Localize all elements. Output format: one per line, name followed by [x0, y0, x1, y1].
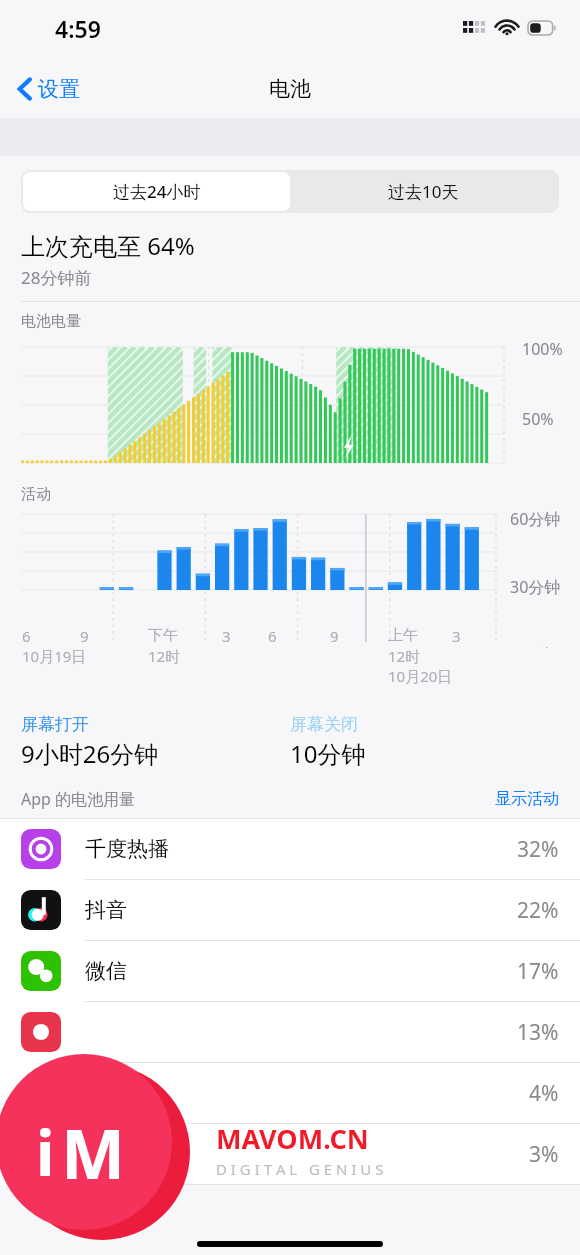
button[interactable]: 设置: [12, 70, 86, 108]
staticText: 微信: [85, 958, 517, 984]
button[interactable]: 显示活动: [495, 789, 559, 809]
staticText: 4:59: [55, 13, 101, 44]
staticText: 4%: [529, 1079, 559, 1108]
staticText: 10月19日: [22, 646, 87, 666]
staticText: 100%: [522, 338, 563, 360]
button[interactable]: 4%: [0, 1063, 580, 1124]
staticText: 0分钟: [510, 644, 552, 648]
staticText: 屏幕打开: [21, 714, 89, 735]
staticText: 电池电量: [21, 312, 81, 331]
staticText: 30分钟: [510, 576, 561, 598]
staticText: 60分钟: [510, 508, 561, 530]
staticText: 上次充电至 64%: [21, 229, 195, 262]
staticText: 10分钟: [290, 737, 366, 770]
button[interactable]: 13%: [0, 1002, 580, 1063]
button[interactable]: 过去24小时: [23, 172, 290, 211]
staticText: 屏幕关闭: [290, 714, 358, 735]
staticText: D I G I T A L G E N I U S: [216, 1159, 384, 1179]
staticText: 浏览器: [85, 1141, 529, 1167]
staticText: 过去10天: [388, 180, 459, 203]
staticText: 千度热播: [85, 836, 517, 862]
button[interactable]: 抖音: [0, 880, 580, 941]
staticText: 9小时26分钟: [21, 737, 159, 770]
staticText: 50%: [522, 408, 554, 430]
staticText: 过去24小时: [113, 180, 201, 203]
staticText: 32%: [517, 835, 559, 864]
button[interactable]: 浏览器: [0, 1124, 580, 1185]
staticText: 活动: [21, 485, 51, 504]
staticText: 22%: [517, 896, 559, 925]
staticText: 上午 12时: [388, 626, 421, 666]
staticText: 6: [268, 626, 277, 646]
staticText: 抖音: [85, 897, 517, 923]
staticText: 设置: [38, 76, 80, 102]
staticText: i: [36, 1110, 55, 1194]
staticText: 17%: [517, 957, 559, 986]
staticText: 下午 12时: [148, 626, 181, 666]
staticText: App 的电池用量: [21, 788, 495, 810]
button[interactable]: 微信: [0, 941, 580, 1002]
staticText: 显示活动: [495, 789, 559, 809]
staticText: 10月20日: [388, 666, 453, 686]
button[interactable]: 千度热播: [0, 819, 580, 880]
staticText: 9: [80, 626, 89, 646]
staticText: [85, 1079, 529, 1108]
staticText: 电池: [269, 76, 311, 102]
staticText: 13%: [517, 1018, 559, 1047]
staticText: 3: [452, 626, 461, 646]
staticText: 3: [222, 626, 231, 646]
staticText: 6: [22, 626, 31, 646]
button[interactable]: 过去10天: [290, 172, 557, 211]
staticText: M: [61, 1106, 126, 1199]
staticText: 3%: [529, 1140, 559, 1169]
staticText: MAVOM.CN: [216, 1120, 369, 1157]
staticText: 9: [330, 626, 339, 646]
staticText: 28分钟前: [21, 266, 92, 289]
